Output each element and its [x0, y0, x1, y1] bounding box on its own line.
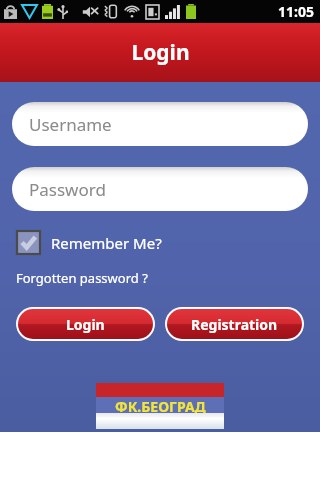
button[interactable]: Password: [12, 167, 308, 211]
staticText: 11:05: [278, 2, 314, 21]
staticText: Forgotten password ?: [16, 269, 148, 287]
staticText: ФК.БЕОГРАД: [115, 397, 206, 413]
staticText: Login: [66, 315, 105, 334]
button[interactable]: FK Beograd logo: [96, 383, 224, 429]
staticText: Login: [131, 38, 190, 67]
staticText: Registration: [191, 315, 278, 334]
button[interactable]: Username: [12, 102, 308, 146]
staticText: Username: [29, 113, 112, 136]
button[interactable]: Login: [18, 309, 153, 339]
button[interactable]: Forgotten password ?: [16, 269, 148, 287]
staticText: Remember Me?: [51, 233, 162, 253]
button[interactable]: Registration: [167, 309, 302, 339]
staticText: Password: [29, 178, 106, 201]
button[interactable]: Remember Me?: [16, 230, 162, 255]
